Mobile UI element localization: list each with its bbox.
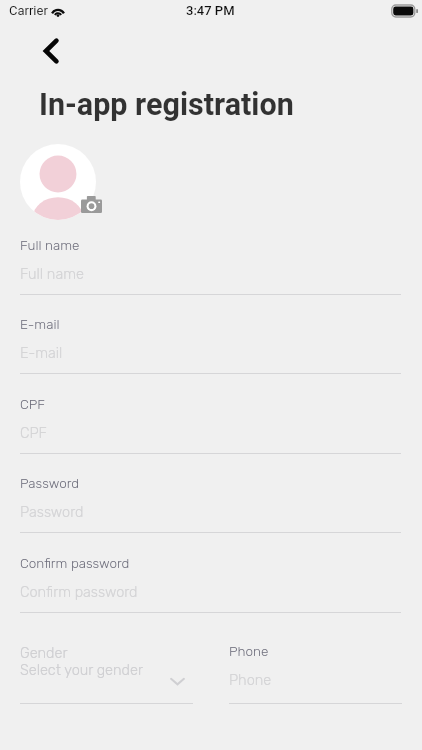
button[interactable]: Phone <box>229 646 402 706</box>
staticText: CPF <box>20 424 47 441</box>
button[interactable]: CPF <box>20 399 401 463</box>
button[interactable]: Password <box>20 478 401 542</box>
staticText: Phone <box>229 671 272 688</box>
button[interactable]: Back <box>30 30 72 72</box>
staticText: CPF <box>20 396 45 412</box>
staticText: Phone <box>229 643 269 659</box>
staticText: In-app registration <box>39 87 294 123</box>
button[interactable]: Gender <box>20 646 193 706</box>
button[interactable]: Full name <box>20 240 401 304</box>
staticText: Full name <box>20 237 80 253</box>
button[interactable]: Change photo <box>80 193 102 215</box>
staticText: 3:47 PM <box>186 3 235 18</box>
staticText: Full name <box>20 265 84 282</box>
button[interactable]: Confirm password <box>20 558 401 622</box>
button[interactable]: E-mail <box>20 319 401 383</box>
staticText: E-mail <box>20 344 63 361</box>
staticText: Confirm password <box>20 583 138 600</box>
button[interactable]: Profile photo <box>20 144 96 220</box>
staticText: Select your gender <box>20 661 143 678</box>
staticText: Password <box>20 475 80 491</box>
staticText: Password <box>20 503 84 520</box>
staticText: Gender <box>20 644 68 661</box>
staticText: Carrier <box>9 3 48 18</box>
staticText: Confirm password <box>20 555 130 571</box>
staticText: E-mail <box>20 316 60 332</box>
